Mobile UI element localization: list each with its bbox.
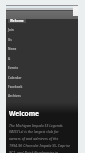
staticText: Welcome	[10, 19, 24, 23]
button[interactable]: Join	[8, 28, 78, 37]
staticText: Join	[8, 28, 14, 32]
button[interactable]: Archives	[8, 94, 78, 103]
button[interactable]: Welcome	[8, 19, 78, 28]
staticText: Us	[8, 38, 12, 42]
button[interactable]: Events	[8, 66, 78, 75]
button[interactable]: News	[8, 47, 78, 56]
staticText: Events	[8, 66, 18, 70]
staticText: Facebook	[8, 85, 23, 89]
button[interactable]: Us	[8, 38, 78, 47]
staticText: Archives	[8, 94, 21, 98]
button[interactable]: Facebook	[8, 85, 78, 94]
staticText: &	[8, 57, 11, 61]
staticText: The Michigan Impala SS Legends (MISS'Ls)…	[9, 123, 71, 153]
staticText: Welcome	[9, 109, 40, 118]
button[interactable]: &	[8, 57, 78, 66]
button[interactable]: Calendar	[8, 76, 78, 85]
staticText: News	[8, 47, 17, 51]
staticText: Calendar	[8, 76, 22, 80]
